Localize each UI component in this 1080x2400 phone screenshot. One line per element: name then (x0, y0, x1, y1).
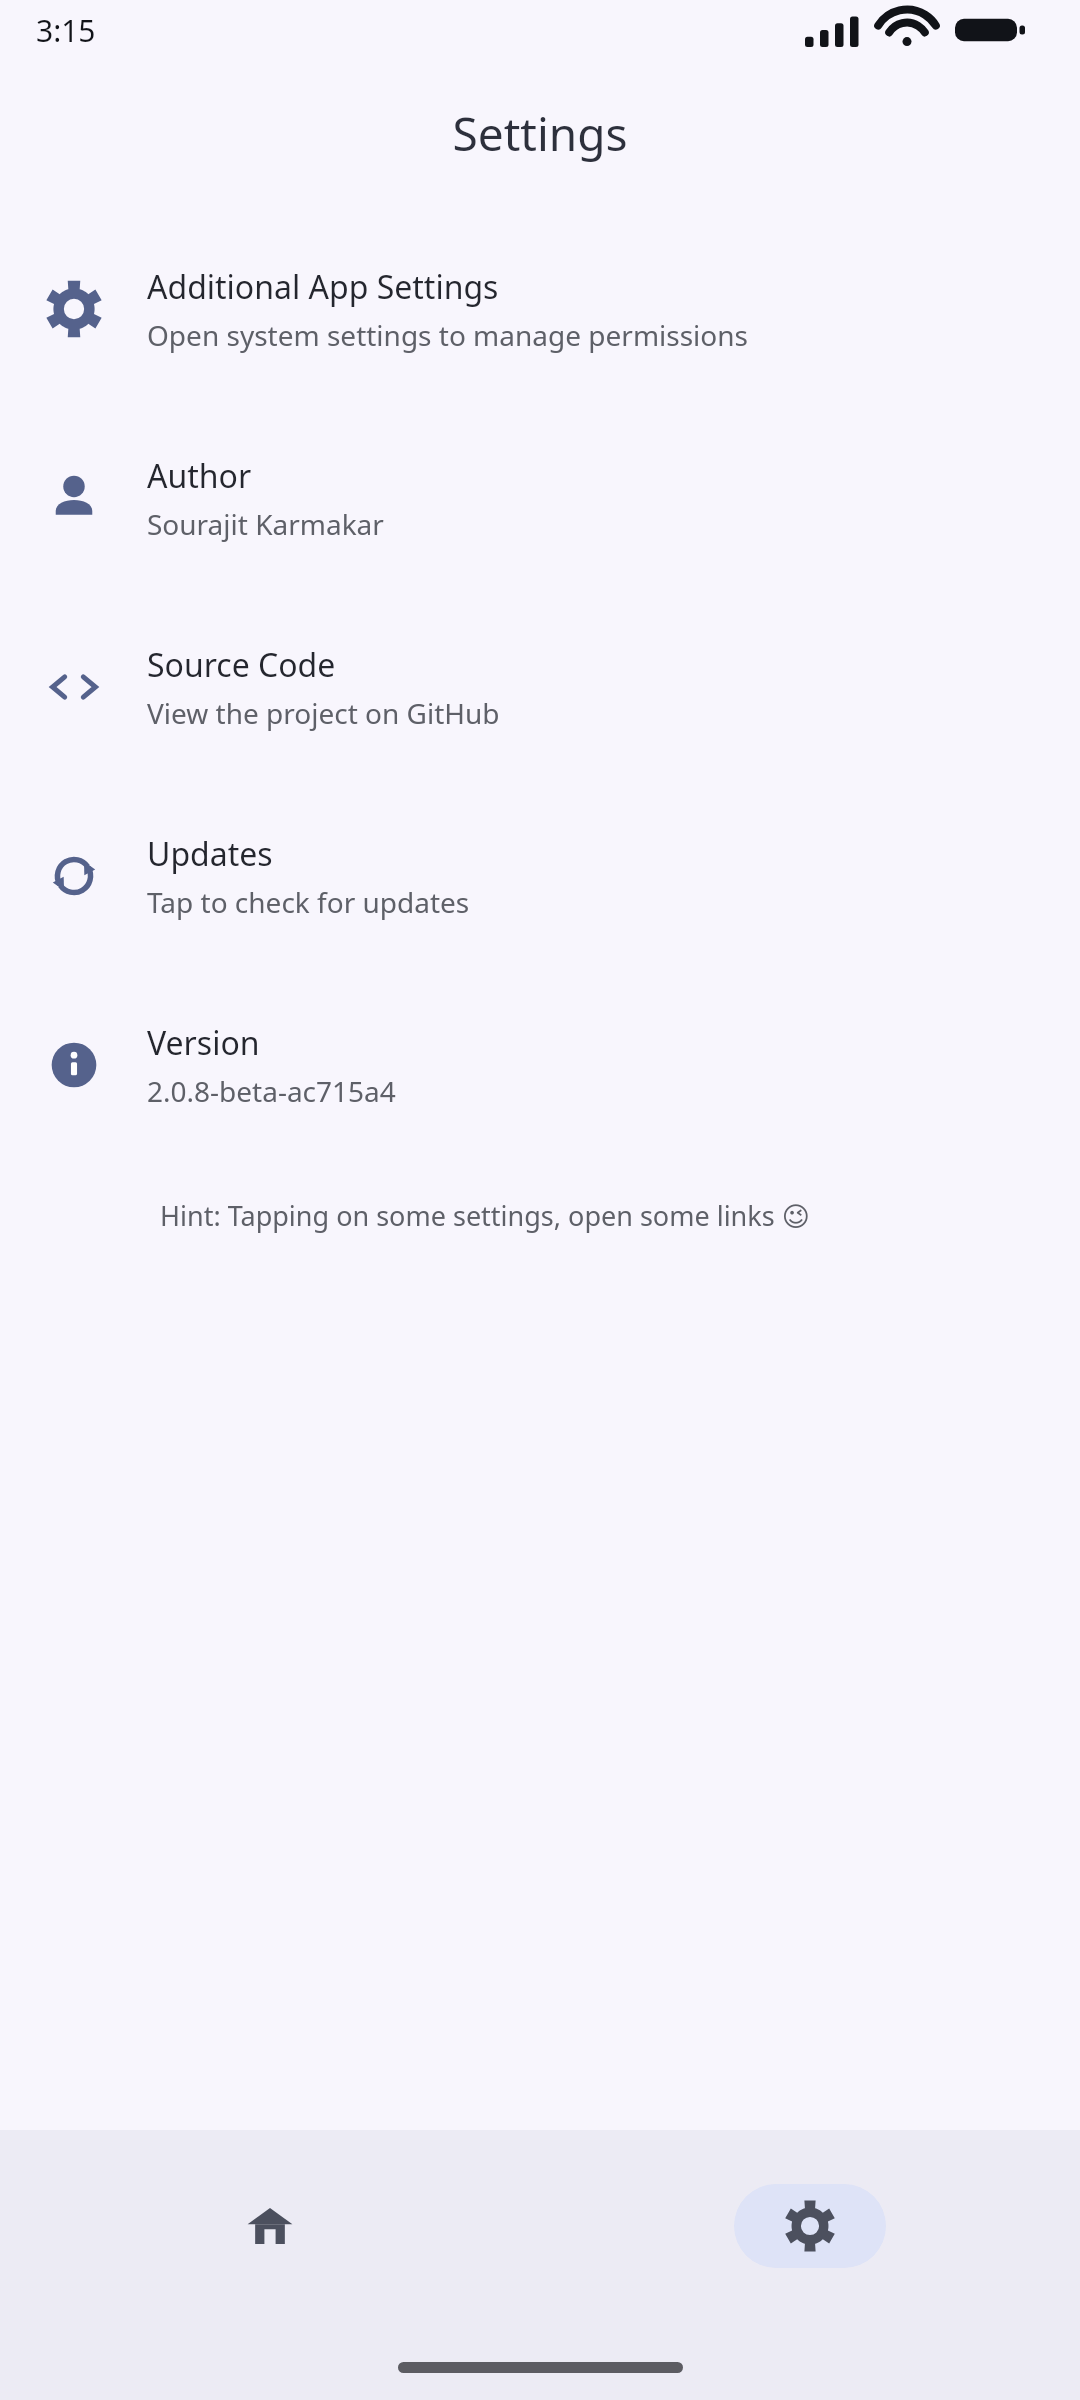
staticText: Open system settings to manage permissio… (147, 316, 748, 354)
button[interactable]: Settings (540, 2130, 1080, 2330)
staticText: Version (147, 1021, 260, 1065)
button[interactable]: Author (0, 432, 1080, 564)
staticText: Settings (0, 102, 1080, 165)
button[interactable]: Version (0, 999, 1080, 1131)
staticText: Tap to check for updates (147, 883, 470, 921)
staticText: 3:15 (36, 10, 96, 51)
staticText: Sourajit Karmakar (147, 505, 384, 543)
button[interactable]: Updates (0, 810, 1080, 942)
button[interactable]: Source Code (0, 621, 1080, 753)
staticText: 2.0.8-beta-ac715a4 (147, 1072, 396, 1110)
staticText: Source Code (147, 643, 336, 687)
staticText: Author (147, 454, 252, 498)
staticText: Hint: Tapping on some settings, open som… (160, 1197, 810, 1234)
button[interactable]: Home (0, 2130, 540, 2330)
staticText: Updates (147, 832, 273, 876)
staticText: View the project on GitHub (147, 694, 500, 732)
staticText: Additional App Settings (147, 265, 499, 309)
button[interactable]: Additional App Settings (0, 243, 1080, 375)
